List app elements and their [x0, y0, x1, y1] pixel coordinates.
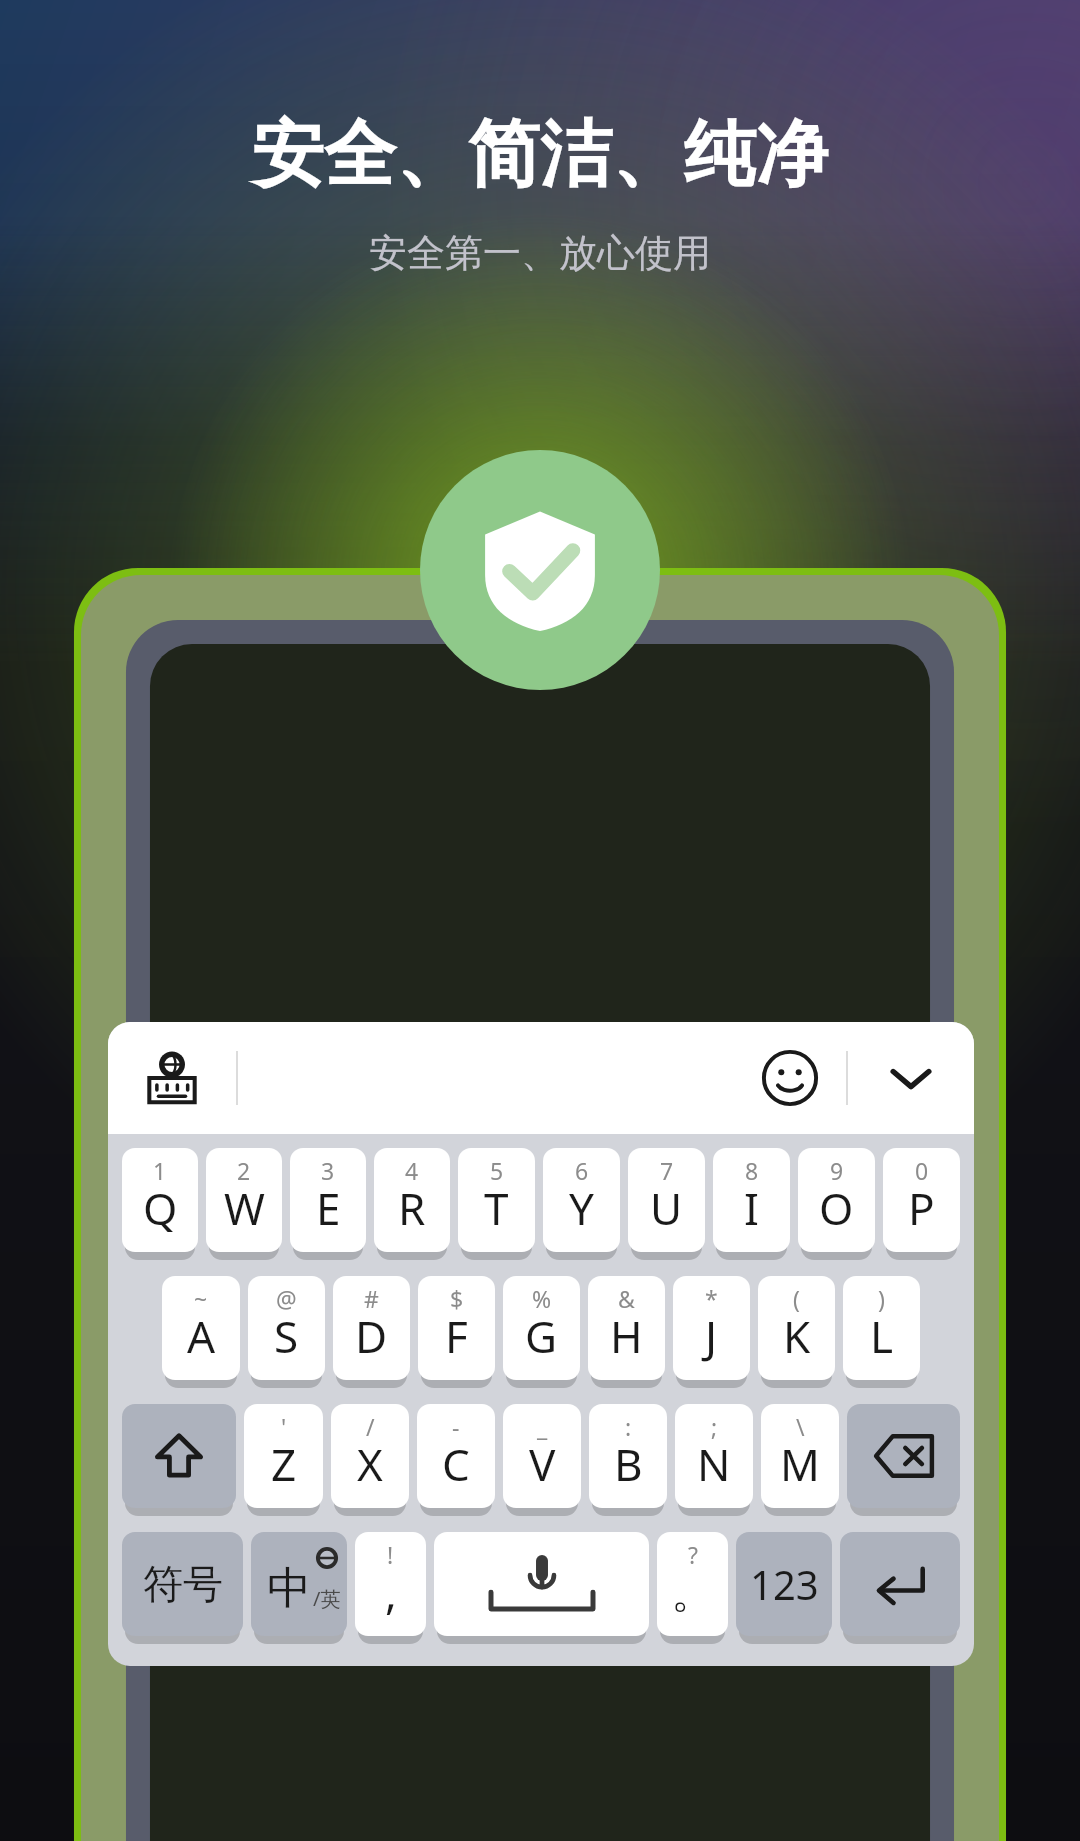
staticText: 安全第一、放心使用: [369, 229, 711, 277]
other: 空格 语音: [457, 1532, 627, 1636]
staticText: A: [187, 1306, 216, 1366]
staticText: &: [618, 1283, 635, 1314]
staticText: Z: [271, 1434, 297, 1494]
staticText: :: [625, 1411, 632, 1442]
staticText: 5: [490, 1155, 504, 1186]
button[interactable]: 切换输入法: [108, 1022, 236, 1134]
button[interactable]: &: [588, 1276, 665, 1380]
staticText: 0: [915, 1155, 929, 1186]
button[interactable]: ?: [657, 1532, 728, 1636]
staticText: Q: [143, 1178, 178, 1238]
staticText: Y: [569, 1178, 594, 1238]
staticText: %: [532, 1283, 552, 1314]
staticText: T: [484, 1178, 509, 1238]
other: 退格: [873, 1425, 935, 1487]
button[interactable]: 9: [798, 1148, 875, 1252]
staticText: 中: [267, 1561, 311, 1616]
button[interactable]: _: [503, 1404, 581, 1508]
staticText: K: [783, 1306, 811, 1366]
button[interactable]: /: [331, 1404, 409, 1508]
staticText: 4: [405, 1155, 419, 1186]
staticText: #: [364, 1283, 379, 1314]
staticText: \: [796, 1411, 805, 1442]
button[interactable]: ): [843, 1276, 920, 1380]
button[interactable]: 0: [883, 1148, 960, 1252]
button[interactable]: #: [333, 1276, 410, 1380]
button[interactable]: %: [503, 1276, 580, 1380]
button[interactable]: 5: [458, 1148, 535, 1252]
staticText: 9: [830, 1155, 844, 1186]
staticText: 1: [153, 1155, 167, 1186]
other: Shift: [155, 1432, 203, 1480]
staticText: 2: [237, 1155, 251, 1186]
staticText: C: [442, 1434, 470, 1494]
staticText: $: [450, 1283, 464, 1314]
staticText: 123: [750, 1557, 819, 1611]
staticText: ;: [711, 1411, 718, 1442]
staticText: *: [705, 1283, 718, 1314]
button[interactable]: Shift: [122, 1404, 236, 1508]
staticText: E: [316, 1178, 341, 1238]
button[interactable]: !: [355, 1532, 426, 1636]
button[interactable]: 回车: [840, 1532, 960, 1636]
staticText: ~: [194, 1283, 208, 1314]
staticText: M: [780, 1434, 820, 1494]
button[interactable]: 7: [628, 1148, 705, 1252]
staticText: /: [366, 1411, 375, 1442]
staticText: 6: [575, 1155, 589, 1186]
button[interactable]: \: [761, 1404, 839, 1508]
staticText: -: [452, 1411, 460, 1442]
button[interactable]: 123: [736, 1532, 832, 1636]
staticText: _: [537, 1411, 548, 1442]
button[interactable]: $: [418, 1276, 495, 1380]
button[interactable]: 退格: [847, 1404, 960, 1508]
button[interactable]: 2: [206, 1148, 282, 1252]
button[interactable]: 符号: [122, 1532, 243, 1636]
staticText: /英: [313, 1585, 341, 1612]
button[interactable]: 6: [543, 1148, 620, 1252]
button[interactable]: ;: [675, 1404, 753, 1508]
staticText: U: [650, 1178, 683, 1238]
staticText: 。: [671, 1565, 715, 1620]
staticText: I: [744, 1178, 759, 1238]
staticText: ': [281, 1411, 287, 1442]
staticText: L: [870, 1306, 894, 1366]
button[interactable]: 中: [251, 1532, 347, 1636]
staticText: P: [908, 1178, 935, 1238]
staticText: O: [819, 1178, 854, 1238]
staticText: V: [529, 1434, 556, 1494]
button[interactable]: :: [589, 1404, 667, 1508]
button[interactable]: 空格 语音: [434, 1532, 649, 1636]
staticText: X: [357, 1434, 383, 1494]
staticText: ): [878, 1283, 885, 1314]
staticText: D: [355, 1306, 388, 1366]
staticText: 7: [660, 1155, 674, 1186]
staticText: 8: [745, 1155, 759, 1186]
staticText: H: [610, 1306, 643, 1366]
other: 回车: [873, 1557, 927, 1611]
button[interactable]: (: [758, 1276, 835, 1380]
button[interactable]: @: [248, 1276, 325, 1380]
button[interactable]: 1: [122, 1148, 198, 1252]
button[interactable]: 安全盾牌: [420, 450, 660, 690]
staticText: S: [274, 1306, 299, 1366]
staticText: 安全、简洁、纯净: [252, 110, 828, 201]
staticText: 3: [321, 1155, 335, 1186]
button[interactable]: 8: [713, 1148, 790, 1252]
staticText: G: [525, 1306, 558, 1366]
staticText: @: [276, 1283, 297, 1314]
button[interactable]: ': [244, 1404, 323, 1508]
button[interactable]: ~: [162, 1276, 240, 1380]
button[interactable]: 表情: [734, 1022, 846, 1134]
staticText: !: [387, 1539, 394, 1570]
staticText: R: [398, 1178, 426, 1238]
button[interactable]: 收起键盘: [848, 1022, 974, 1134]
staticText: J: [705, 1306, 718, 1366]
staticText: (: [793, 1283, 800, 1314]
staticText: F: [445, 1306, 468, 1366]
button[interactable]: *: [673, 1276, 750, 1380]
button[interactable]: 4: [374, 1148, 450, 1252]
button[interactable]: 3: [290, 1148, 366, 1252]
staticText: ?: [688, 1539, 698, 1570]
button[interactable]: -: [417, 1404, 495, 1508]
